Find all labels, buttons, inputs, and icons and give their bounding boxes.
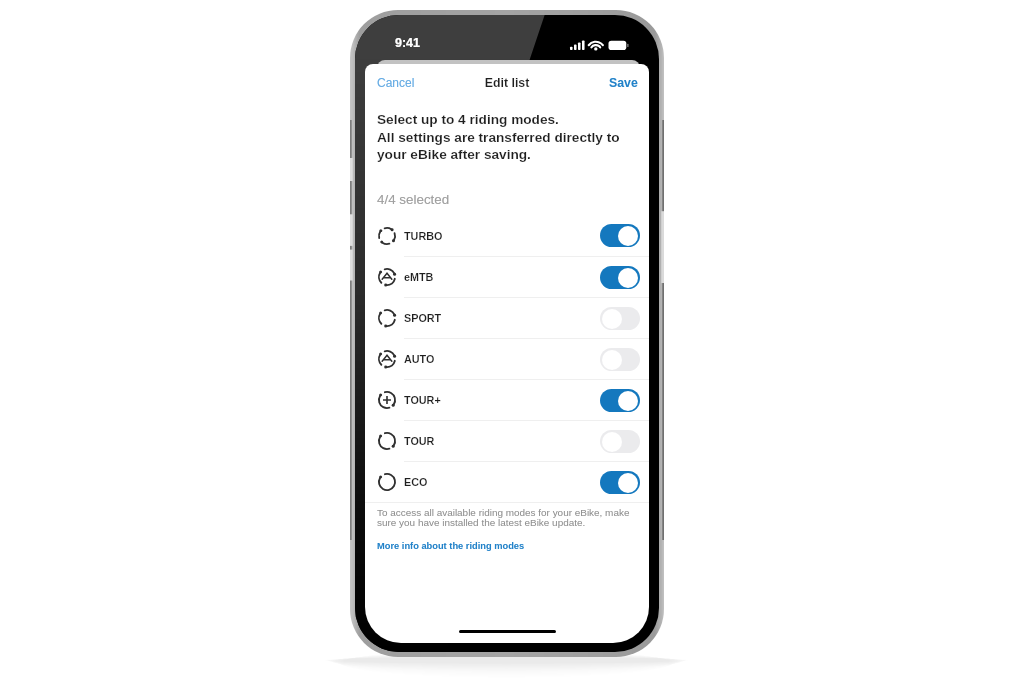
staticText: 4/4 selected [377, 192, 450, 207]
button[interactable]: Enabled [600, 266, 640, 289]
button[interactable]: Enabled [600, 471, 640, 494]
button[interactable]: More info about the riding modes [365, 538, 535, 554]
staticText: AUTO [404, 353, 435, 365]
button[interactable]: ECO [365, 462, 649, 502]
staticText: ECO [404, 476, 428, 488]
button[interactable]: Disabled [600, 307, 640, 330]
staticText: Edit list [365, 76, 649, 90]
staticText: Cancel [377, 76, 415, 89]
button[interactable]: Save [599, 72, 649, 94]
button[interactable]: eMTB [365, 257, 649, 297]
button[interactable]: Disabled [600, 430, 640, 453]
staticText: eMTB [404, 271, 434, 283]
button[interactable]: Enabled [600, 224, 640, 247]
staticText: Select up to 4 riding modes. All setting… [377, 112, 620, 162]
button[interactable]: Disabled [600, 348, 640, 371]
staticText: Save [609, 76, 638, 90]
button[interactable]: SPORT [365, 298, 649, 338]
staticText: 9:41 [395, 36, 421, 50]
button[interactable]: TOUR+ [365, 380, 649, 420]
staticText: TOUR [404, 435, 435, 447]
staticText: To access all available riding modes for… [377, 507, 630, 528]
button[interactable]: Enabled [600, 389, 640, 412]
button[interactable]: TURBO [365, 215, 649, 256]
staticText: More info about the riding modes [377, 541, 525, 551]
button[interactable]: Cancel [365, 72, 425, 93]
button[interactable]: TOUR [365, 421, 649, 461]
button[interactable]: AUTO [365, 339, 649, 379]
staticText: TURBO [404, 230, 443, 242]
staticText: TOUR+ [404, 394, 441, 406]
staticText: SPORT [404, 312, 442, 324]
